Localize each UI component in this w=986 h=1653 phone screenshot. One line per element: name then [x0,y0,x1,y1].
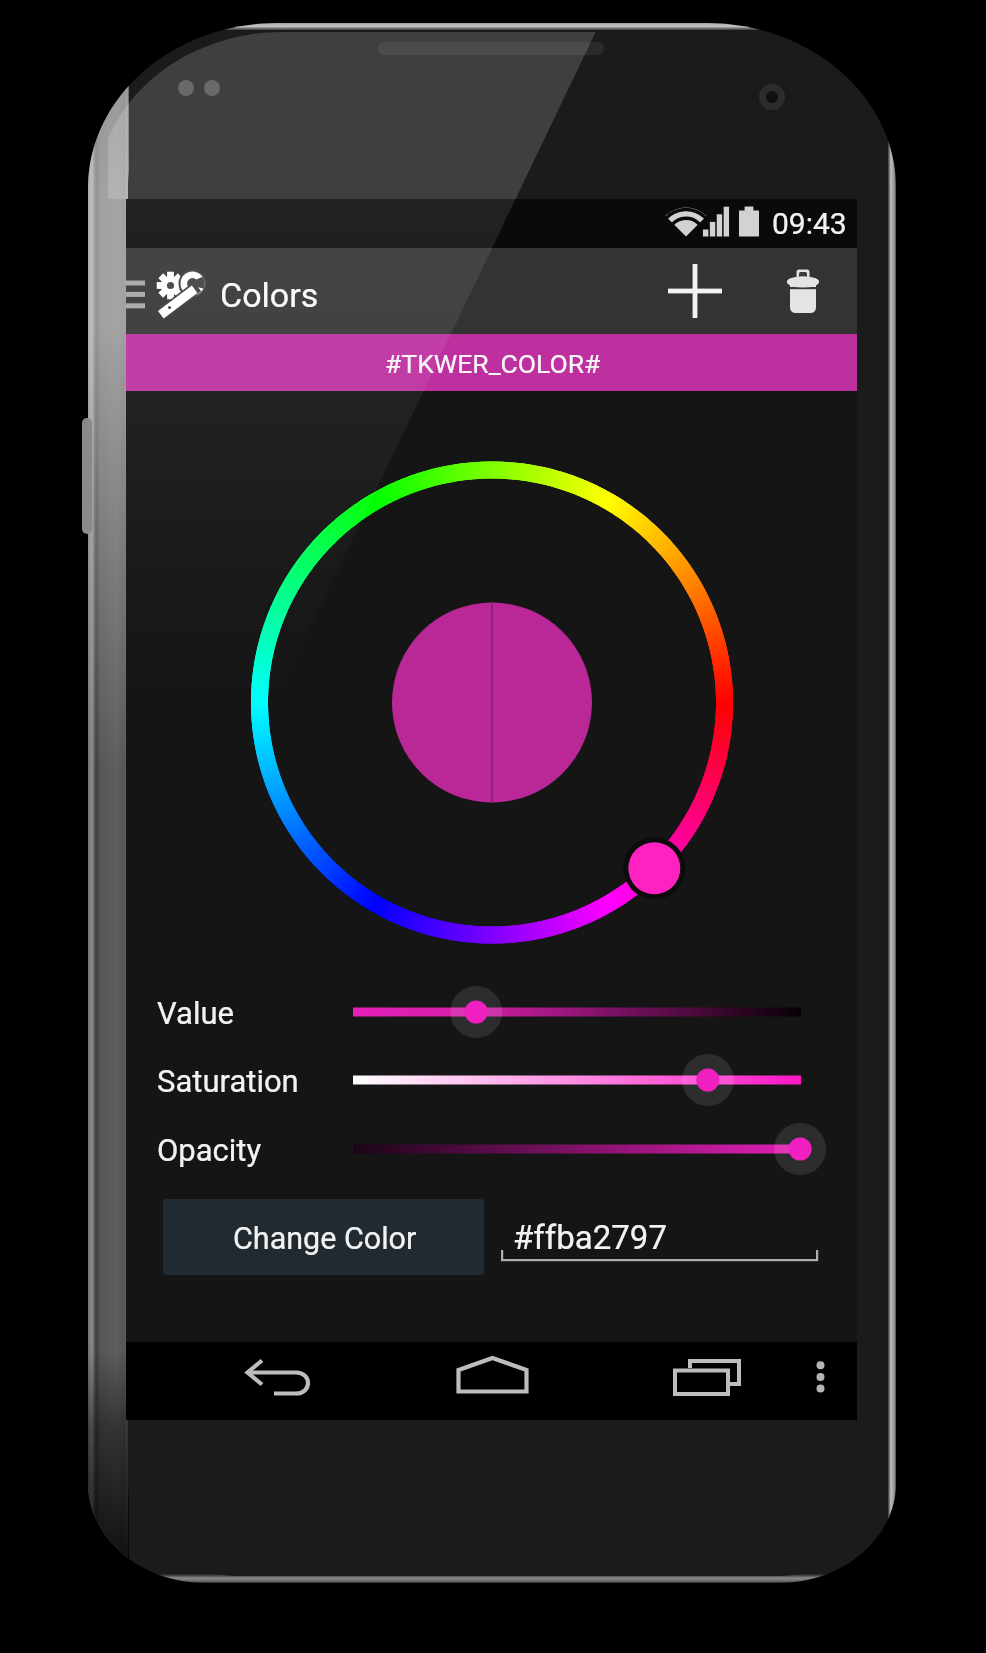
button[interactable]: Menu [126,248,256,334]
staticText: Saturation [157,1063,299,1099]
button[interactable]: Back [160,1342,375,1420]
button[interactable]: Value slider [353,985,805,1040]
button[interactable]: Opacity slider [353,1122,805,1177]
staticText: Value [157,995,234,1031]
button[interactable]: Recents [600,1342,775,1420]
staticText: Colors [220,275,319,315]
button[interactable]: Hex value [500,1199,820,1275]
staticText: 09:43 [772,206,847,241]
button[interactable]: Home [380,1342,595,1420]
button[interactable]: TKWER_COLOR [126,334,857,391]
staticText: Opacity [157,1132,262,1168]
button[interactable]: Delete [700,248,804,334]
button[interactable]: More options [780,1342,856,1420]
staticText: #TKWER_COLOR# [385,348,601,379]
button[interactable]: Saturation slider [353,1053,805,1108]
staticText: #ffba2797 [513,1218,667,1257]
button[interactable]: Change Color [163,1199,484,1275]
button[interactable]: Color wheel [240,450,745,955]
button[interactable]: Add [600,248,696,334]
staticText: Change Color [233,1221,417,1257]
